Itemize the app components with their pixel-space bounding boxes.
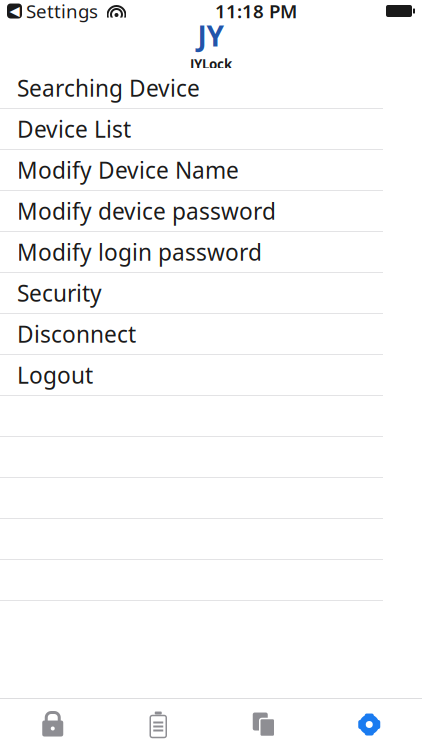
staticText: Modify login password [17, 237, 262, 267]
staticText: ◀ [9, 3, 19, 18]
staticText: 11:18 PM [215, 0, 297, 23]
button[interactable]: Device List [0, 109, 422, 150]
staticText: Device List [17, 114, 131, 144]
button[interactable]: Modify Device Name [0, 150, 422, 191]
button[interactable]: Disconnect [0, 314, 422, 355]
button[interactable]: Settings [316, 699, 422, 749]
staticText: Searching Device [17, 73, 200, 103]
staticText: Modify Device Name [17, 155, 239, 185]
staticText: JYLock [190, 55, 232, 73]
button[interactable]: Logout [0, 355, 422, 396]
staticText: Settings [26, 0, 98, 23]
button[interactable]: Searching Device [0, 68, 422, 109]
button[interactable]: Lock [0, 699, 105, 749]
staticText: Security [17, 278, 102, 308]
staticText: Disconnect [17, 319, 136, 349]
staticText: Modify device password [17, 196, 276, 226]
staticText: Logout [17, 360, 93, 390]
button[interactable]: Security [0, 273, 422, 314]
button[interactable]: Modify login password [0, 232, 422, 273]
staticText: JY [197, 17, 224, 54]
button[interactable]: Modify device password [0, 191, 422, 232]
button[interactable]: Battery [105, 699, 211, 749]
button[interactable]: Records [211, 699, 316, 749]
